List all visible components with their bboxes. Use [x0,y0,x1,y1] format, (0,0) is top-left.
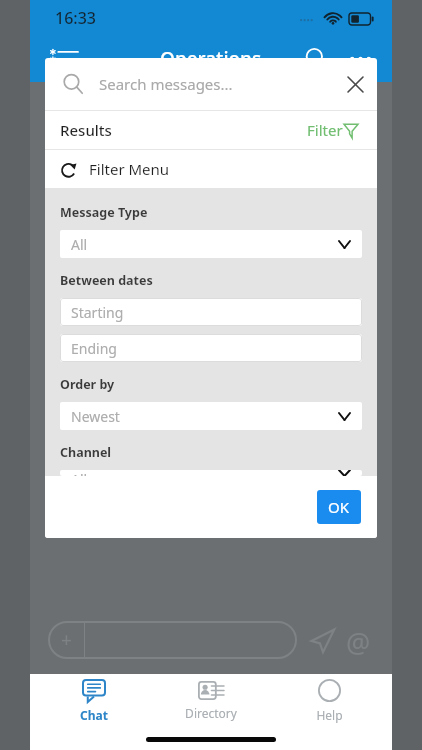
staticText: Message Type [60,204,148,221]
button[interactable]: Newest [60,402,362,430]
staticText: Order by [60,376,115,393]
staticText: Channel [60,444,112,461]
staticText: Search messages... [99,74,233,94]
button[interactable]: All [60,470,362,476]
staticText: All [71,235,88,254]
button[interactable]: Directory [157,674,265,728]
staticText: + [61,627,72,653]
staticText: 16:33 [55,7,96,29]
button[interactable]: Ending [60,334,362,362]
button[interactable]: Filter [303,116,362,144]
button[interactable]: Channel list [44,39,84,79]
staticText: Starting [71,303,124,322]
button[interactable]: Starting [60,298,362,326]
button[interactable]: All [60,230,362,258]
staticText: Filter Menu [89,159,170,179]
button[interactable]: Search [294,37,338,81]
button[interactable]: More options [338,37,382,81]
staticText: OK [328,497,350,517]
staticText: Help [316,707,343,723]
button[interactable]: Message input [48,621,297,659]
staticText: Newest [71,407,120,426]
staticText: Ending [71,339,117,358]
button[interactable]: Chat [40,674,148,728]
staticText: @ [346,624,371,656]
button[interactable]: Help [275,674,383,728]
staticText: Results [60,120,112,140]
staticText: Filter [307,120,343,140]
button[interactable]: Filter Menu [60,150,362,188]
button[interactable]: Close [333,62,377,106]
button[interactable]: OK [317,490,361,524]
staticText: Operations [160,46,262,72]
staticText: Chat [80,707,108,723]
staticText: Between dates [60,272,153,289]
button[interactable]: Mention [342,624,374,656]
button[interactable]: Search messages... [45,58,377,110]
button[interactable]: Send [306,624,338,656]
staticText: Directory [185,705,237,721]
staticText: All [71,470,88,476]
